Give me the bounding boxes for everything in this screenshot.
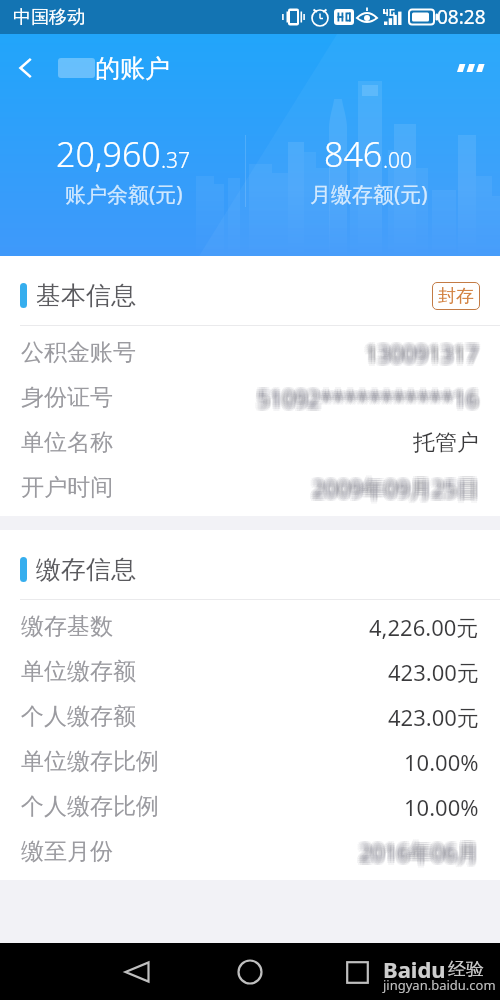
staticText: 2009年09月25日	[315, 473, 482, 503]
button[interactable]: 封存	[432, 282, 480, 310]
staticText: Baidu	[383, 954, 446, 984]
staticText: 2009年09月25日	[310, 469, 477, 499]
staticText: 2009年09月25日	[310, 477, 477, 507]
staticText: 个人缴存额	[21, 702, 136, 731]
button[interactable]: 个人缴存比例	[21, 784, 479, 829]
staticText: 2016年06月	[361, 839, 481, 869]
button[interactable]: 单位名称	[21, 420, 479, 465]
staticText: 51092***********16	[256, 381, 478, 411]
staticText: 缴存信息	[36, 554, 136, 585]
staticText: 2009年09月25日	[309, 475, 476, 505]
staticText: 130091317	[364, 340, 478, 370]
staticText: 封存	[438, 285, 474, 308]
staticText: 130091317	[367, 336, 481, 366]
staticText: 130091317	[367, 342, 481, 372]
staticText: 51092***********16	[260, 385, 482, 415]
staticText: 423.00元	[388, 657, 479, 687]
staticText: 2009年09月25日	[312, 471, 479, 501]
staticText: 08:28	[437, 4, 486, 30]
button[interactable]: 开户时间	[21, 465, 479, 510]
staticText: 2016年06月	[362, 835, 482, 865]
staticText: 2016年06月	[357, 841, 477, 871]
staticText: 51092***********16	[257, 385, 479, 415]
button[interactable]: More options	[442, 46, 500, 90]
staticText: 缴至月份	[21, 837, 113, 866]
staticText: 2016年06月	[362, 839, 482, 869]
button[interactable]: Back	[112, 947, 162, 997]
staticText: 单位缴存比例	[21, 747, 159, 776]
staticText: 4,226.00元	[369, 612, 479, 642]
staticText: 2009年09月25日	[314, 477, 481, 507]
staticText: 2009年09月25日	[312, 477, 479, 507]
staticText: 130091317	[365, 334, 479, 364]
staticText: 2016年06月	[361, 841, 481, 871]
staticText: 2016年06月	[359, 839, 479, 869]
staticText: 缴存基数	[21, 612, 113, 641]
staticText: 130091317	[364, 338, 478, 368]
button[interactable]: Recent apps	[332, 947, 382, 997]
staticText: 2016年06月	[356, 837, 476, 867]
staticText: 2009年09月25日	[314, 469, 481, 499]
staticText: 2016年06月	[362, 837, 482, 867]
button[interactable]: 个人缴存额	[21, 694, 479, 739]
staticText: 130091317	[365, 338, 479, 368]
button[interactable]: Back	[0, 46, 52, 90]
staticText: 51092***********16	[259, 387, 481, 417]
staticText: 51092***********16	[257, 387, 479, 417]
staticText: 10.00%	[404, 792, 479, 822]
staticText: 130091317	[364, 336, 478, 366]
staticText: 51092***********16	[255, 387, 477, 417]
button[interactable]: 身份证号	[21, 375, 479, 420]
staticText: 的账户	[95, 53, 170, 84]
button[interactable]: Home	[225, 947, 275, 997]
staticText: 51092***********16	[260, 381, 482, 411]
staticText: 2009年09月25日	[309, 471, 476, 501]
staticText: 130091317	[368, 338, 482, 368]
staticText: 423.00元	[388, 702, 479, 732]
button[interactable]: 单位缴存额	[21, 649, 479, 694]
staticText: 130091317	[367, 340, 481, 370]
staticText: 130091317	[365, 340, 479, 370]
button[interactable]: 缴存基数	[21, 604, 479, 649]
staticText: 2009年09月25日	[309, 473, 476, 503]
staticText: 2009年09月25日	[314, 473, 481, 503]
staticText: 单位名称	[21, 428, 113, 457]
staticText: .00	[383, 146, 413, 175]
button[interactable]: 公积金账号	[21, 330, 479, 375]
staticText: 51092***********16	[257, 379, 479, 409]
staticText: 130091317	[362, 340, 476, 370]
staticText: 130091317	[368, 340, 482, 370]
staticText: 经验	[448, 958, 484, 981]
staticText: 单位缴存额	[21, 657, 136, 686]
staticText: 20,960	[56, 131, 161, 177]
staticText: 2016年06月	[361, 835, 481, 865]
staticText: 2016年06月	[361, 837, 481, 867]
staticText: .37	[161, 146, 191, 175]
staticText: 2016年06月	[359, 835, 479, 865]
staticText: 51092***********16	[254, 385, 476, 415]
staticText: 130091317	[368, 336, 482, 366]
staticText: 130091317	[362, 338, 476, 368]
staticText: 2016年06月	[359, 841, 479, 871]
staticText: 2016年06月	[359, 837, 479, 867]
staticText: 51092***********16	[256, 383, 478, 413]
staticText: 130091317	[363, 334, 477, 364]
staticText: 846	[324, 131, 383, 177]
staticText: 51092***********16	[257, 381, 479, 411]
staticText: 51092***********16	[259, 385, 481, 415]
staticText: 2009年09月25日	[312, 469, 479, 499]
button[interactable]: 单位缴存比例	[21, 739, 479, 784]
button[interactable]: 缴至月份	[21, 829, 479, 874]
staticText: 130091317	[363, 342, 477, 372]
staticText: 51092***********16	[260, 383, 482, 413]
staticText: 51092***********16	[259, 379, 481, 409]
staticText: 身份证号	[21, 383, 113, 412]
staticText: 2016年06月	[356, 839, 476, 869]
staticText: 个人缴存比例	[21, 792, 159, 821]
staticText: 130091317	[367, 338, 481, 368]
staticText: 基本信息	[36, 280, 136, 311]
staticText: 2009年09月25日	[311, 475, 478, 505]
staticText: 2009年09月25日	[311, 471, 478, 501]
staticText: 2016年06月	[356, 835, 476, 865]
staticText: 51092***********16	[254, 381, 476, 411]
